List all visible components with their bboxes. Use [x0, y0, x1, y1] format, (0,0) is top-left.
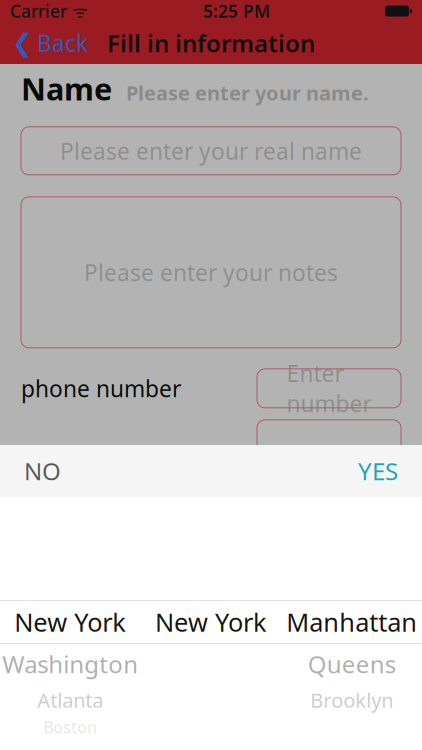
button[interactable]: NO [0, 445, 85, 497]
staticText: phone number [21, 373, 181, 403]
staticText: ❮ [12, 29, 33, 57]
staticText: Carrier [10, 0, 67, 22]
staticText: Fill in information [107, 27, 315, 59]
staticText: Name [21, 68, 112, 109]
staticText: Boston [43, 716, 97, 738]
staticText: New York [14, 605, 126, 639]
staticText: Please enter your notes [84, 257, 338, 287]
staticText: 5:25 PM [203, 0, 270, 22]
staticText: Back [37, 28, 88, 58]
staticText: Please enter your real name [60, 136, 362, 166]
staticText: Brooklyn [310, 687, 393, 713]
staticText: YES [358, 455, 398, 487]
staticText: ᯤ [67, 0, 88, 22]
staticText: NO [24, 455, 61, 487]
staticText: Washington [2, 648, 138, 680]
staticText: New York [155, 605, 267, 639]
staticText: Queens [308, 648, 396, 680]
staticText: Enter number [286, 358, 371, 418]
button[interactable]: YES [334, 445, 422, 497]
staticText: Manhattan [286, 605, 417, 639]
staticText: Atlanta [37, 687, 103, 713]
staticText: Please enter your name. [126, 79, 369, 106]
button[interactable]: ❮ [0, 22, 100, 64]
